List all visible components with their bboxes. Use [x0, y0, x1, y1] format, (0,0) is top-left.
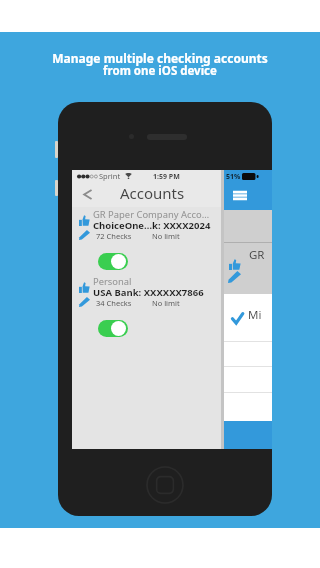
staticText: 1:59 PM	[153, 172, 180, 182]
staticText: Manage multiple checking accounts	[52, 50, 268, 66]
button[interactable]: Toggle account	[98, 253, 128, 270]
staticText: ChoiceOne…k: XXXX2024	[93, 219, 211, 232]
staticText: USA Bank: XXXXXX7866	[93, 286, 204, 299]
button[interactable]: Back	[77, 183, 99, 206]
staticText: Accounts	[120, 183, 185, 203]
staticText: from one iOS device	[103, 63, 217, 79]
staticText: No limit	[152, 231, 180, 241]
button[interactable]: Menu	[231, 187, 249, 203]
staticText: GR	[249, 247, 265, 263]
staticText: 51%	[226, 172, 241, 182]
button[interactable]: Personal	[72, 274, 259, 341]
staticText: 72 Checks	[96, 231, 132, 241]
button[interactable]: Toggle account	[98, 320, 128, 337]
staticText: No limit	[152, 298, 180, 308]
staticText: Mi	[248, 307, 262, 323]
button[interactable]: GR Paper Company Acco…	[72, 207, 259, 274]
staticText: 34 Checks	[96, 298, 132, 308]
staticText: GR Paper Company Acco…	[93, 208, 210, 221]
staticText: Personal	[93, 275, 132, 288]
staticText: Sprint	[99, 171, 121, 181]
